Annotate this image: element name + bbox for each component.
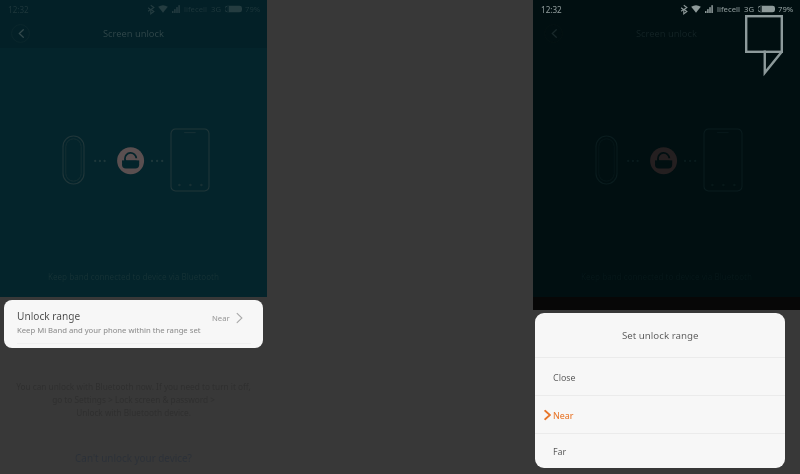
staticText: lifecell [717,4,740,14]
staticText: Keep Mi Band and your phone within the r… [17,325,201,335]
button[interactable]: Unlock range [4,300,263,348]
staticText: Near [212,313,230,323]
staticText: 79% [778,4,794,14]
button[interactable]: Back [10,23,31,44]
staticText: 3G [744,4,754,14]
staticText: 3G [211,4,221,14]
button[interactable]: Back [543,23,564,44]
staticText: 79% [245,4,261,14]
staticText: Near [553,409,574,421]
staticText: 12:32 [541,4,562,15]
button[interactable]: Close [535,358,785,395]
staticText: lifecell [184,4,207,14]
staticText: Screen unlock [103,27,164,40]
staticText: Far [553,445,567,457]
button[interactable]: Near [535,396,785,433]
staticText: Close [553,371,576,383]
staticText: 12:32 [8,4,29,15]
other: Screenshot marker [745,15,785,74]
staticText: Unlock range [17,309,81,323]
staticText: Keep band connected to device via Blueto… [0,271,267,282]
staticText: Screen unlock [636,27,697,40]
staticText: Set unlock range [622,329,699,342]
button[interactable]: Far [535,434,785,468]
